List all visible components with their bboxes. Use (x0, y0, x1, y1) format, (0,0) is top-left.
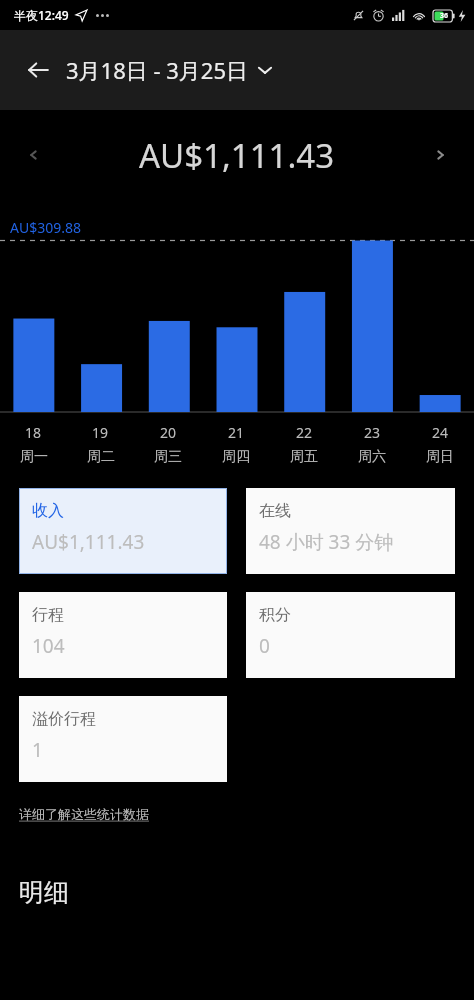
staticText: 在线 (259, 501, 291, 521)
staticText: 21 (228, 423, 245, 442)
staticText: 周三 (154, 448, 182, 466)
staticText: 22 (296, 423, 313, 442)
staticText: 收入 (32, 501, 64, 521)
staticText: 周日 (426, 448, 454, 466)
staticText: 明细 (19, 877, 69, 908)
staticText: 24 (432, 423, 449, 442)
staticText: 周四 (222, 448, 250, 466)
button[interactable]: Previous week (14, 135, 54, 175)
button[interactable]: Next week (420, 135, 460, 175)
button[interactable]: 在线 (246, 488, 455, 574)
staticText: 3月18日 - 3月25日 (66, 55, 249, 85)
staticText: 周五 (290, 448, 318, 466)
staticText: 104 (32, 633, 65, 659)
staticText: 1 (32, 737, 43, 763)
staticText: AU$1,111.43 (139, 133, 335, 178)
button[interactable]: 收入 (19, 488, 227, 574)
button[interactable]: Back (18, 50, 58, 90)
staticText: 0 (259, 633, 270, 659)
staticText: 周六 (358, 448, 386, 466)
staticText: 19 (92, 423, 109, 442)
staticText: 20 (160, 423, 177, 442)
staticText: 积分 (259, 605, 291, 625)
staticText: AU$309.88 (10, 218, 81, 237)
button[interactable]: 3月18日 - 3月25日 (66, 55, 273, 85)
staticText: 周二 (87, 448, 115, 466)
staticText: 溢价行程 (32, 709, 96, 729)
staticText: 36 (440, 11, 449, 21)
staticText: 18 (25, 423, 42, 442)
staticText: 48 小时 33 分钟 (259, 529, 394, 555)
staticText: 行程 (32, 605, 64, 625)
button[interactable]: 溢价行程 (19, 696, 227, 782)
staticText: 半夜12:49 (14, 7, 69, 23)
staticText: AU$1,111.43 (32, 529, 145, 555)
staticText: 23 (364, 423, 381, 442)
button[interactable]: 行程 (19, 592, 227, 678)
button[interactable]: 详细了解这些统计数据 (19, 806, 149, 822)
button[interactable]: 积分 (246, 592, 455, 678)
staticText: 周一 (20, 448, 48, 466)
